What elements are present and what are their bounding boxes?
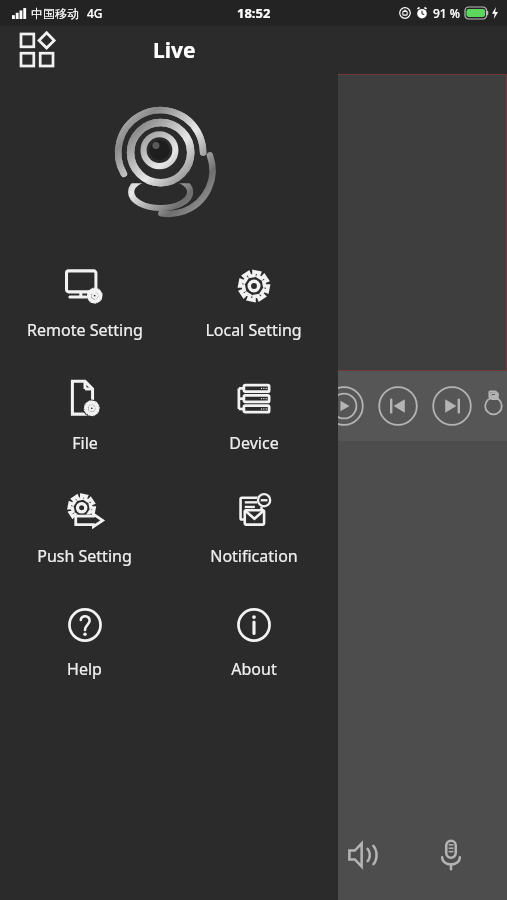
button[interactable]: Notification: [169, 475, 338, 588]
button[interactable]: Previous: [376, 384, 420, 428]
staticText: File: [72, 432, 98, 454]
button[interactable]: Play: [322, 384, 366, 428]
staticText: About: [231, 658, 277, 680]
staticText: Remote Setting: [27, 319, 143, 341]
staticText: Notification: [210, 545, 298, 567]
staticText: Device: [229, 432, 279, 454]
button[interactable]: Local Setting: [169, 249, 338, 362]
button[interactable]: Microphone: [428, 832, 474, 878]
button[interactable]: Menu: [14, 27, 60, 73]
staticText: Live: [153, 36, 196, 65]
button[interactable]: Speaker: [340, 832, 386, 878]
button[interactable]: File: [0, 362, 169, 475]
staticText: 91 %: [433, 5, 461, 21]
button[interactable]: Snapshot: [484, 384, 503, 428]
button[interactable]: Next: [430, 384, 474, 428]
button[interactable]: Help: [0, 588, 169, 701]
button[interactable]: About: [169, 588, 338, 701]
button[interactable]: Remote Setting: [0, 249, 169, 362]
button[interactable]: Device: [169, 362, 338, 475]
button[interactable]: Push Setting: [0, 475, 169, 588]
staticText: Local Setting: [205, 319, 302, 341]
staticText: 中国移动: [31, 6, 79, 21]
staticText: Help: [67, 658, 102, 680]
staticText: 4G: [87, 5, 103, 21]
staticText: 18:52: [237, 4, 271, 22]
staticText: Push Setting: [37, 545, 132, 567]
